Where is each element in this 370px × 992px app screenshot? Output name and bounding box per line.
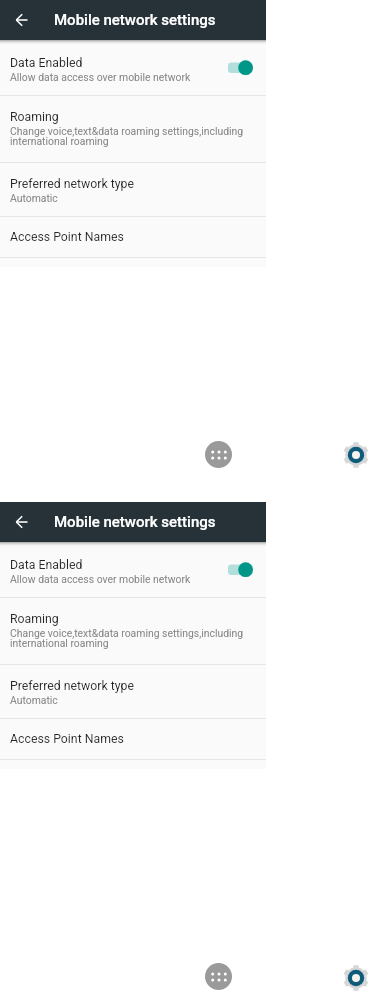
- button[interactable]: Data Enabled: [0, 542, 266, 597]
- button[interactable]: Roaming: [0, 598, 266, 664]
- staticText: Data Enabled: [10, 558, 83, 572]
- staticText: Preferred network type: [10, 679, 135, 693]
- button[interactable]: Roaming: [0, 96, 266, 162]
- staticText: Preferred network type: [10, 177, 135, 191]
- staticText: Allow data access over mobile network: [10, 71, 191, 83]
- staticText: Access Point Names: [10, 230, 124, 244]
- button[interactable]: Access Point Names: [0, 217, 266, 257]
- button[interactable]: Data Enabled switch, on: [222, 555, 258, 583]
- button[interactable]: All apps: [205, 963, 232, 990]
- button[interactable]: Navigate up: [0, 502, 41, 542]
- button[interactable]: Access Point Names: [0, 719, 266, 759]
- button[interactable]: Preferred network type: [0, 665, 266, 718]
- button[interactable]: Data Enabled switch, on: [222, 53, 258, 81]
- button[interactable]: Navigate up: [0, 0, 41, 40]
- staticText: Automatic: [10, 694, 58, 706]
- button[interactable]: Data Enabled: [0, 40, 266, 95]
- button[interactable]: All apps: [205, 441, 232, 468]
- staticText: Allow data access over mobile network: [10, 573, 191, 585]
- staticText: Access Point Names: [10, 732, 124, 746]
- button[interactable]: Preferred network type: [0, 163, 266, 216]
- staticText: Automatic: [10, 192, 58, 204]
- button[interactable]: Settings: [343, 442, 369, 468]
- staticText: Mobile network settings: [54, 11, 216, 29]
- staticText: Mobile network settings: [54, 513, 216, 531]
- staticText: Change voice,text&data roaming settings,…: [10, 125, 244, 148]
- staticText: Data Enabled: [10, 56, 83, 70]
- staticText: Change voice,text&data roaming settings,…: [10, 627, 244, 650]
- staticText: Roaming: [10, 612, 59, 626]
- staticText: Roaming: [10, 110, 59, 124]
- button[interactable]: Settings: [343, 965, 369, 991]
